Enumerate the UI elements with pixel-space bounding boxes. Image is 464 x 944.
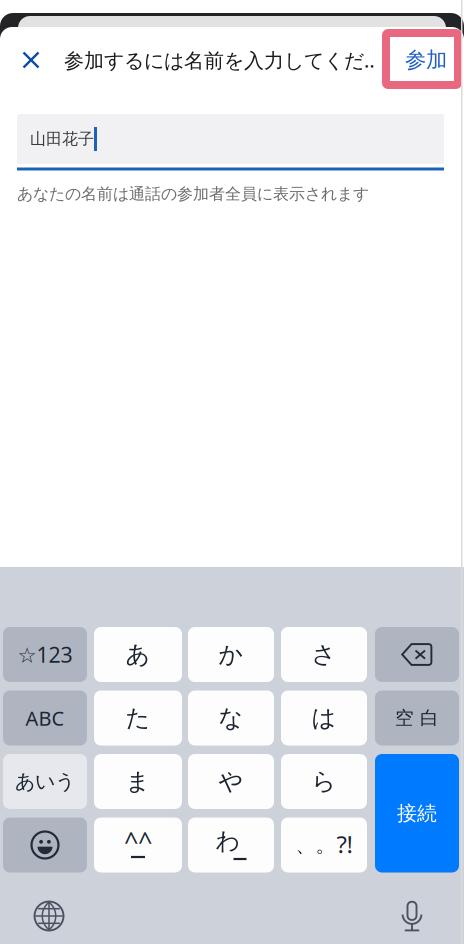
button[interactable]: さ bbox=[281, 627, 367, 682]
staticText: あ bbox=[125, 640, 150, 669]
staticText: や bbox=[218, 767, 243, 796]
button[interactable]: 記号と数字 bbox=[3, 627, 87, 682]
button[interactable]: あ bbox=[94, 627, 182, 682]
button[interactable]: 音声入力 bbox=[400, 900, 424, 932]
button[interactable]: ABC bbox=[3, 690, 87, 745]
staticText: 山田花子 bbox=[30, 129, 94, 149]
staticText: 接続 bbox=[397, 801, 437, 826]
staticText: わ bbox=[215, 826, 240, 856]
button[interactable]: ま bbox=[94, 754, 182, 809]
staticText: ☆123 bbox=[17, 640, 72, 669]
staticText: た bbox=[125, 703, 150, 733]
button[interactable]: 句読点 bbox=[281, 817, 367, 872]
button[interactable]: わ bbox=[188, 817, 274, 872]
button[interactable]: あいう bbox=[3, 754, 87, 809]
button[interactable]: は bbox=[281, 690, 367, 745]
staticText: 、。 bbox=[295, 833, 335, 857]
staticText: 参加するには名前を入力してくだ‥ bbox=[64, 47, 375, 73]
button[interactable]: 削除 bbox=[375, 627, 459, 682]
staticText: あいう bbox=[15, 769, 75, 794]
staticText: ら bbox=[311, 767, 336, 796]
staticText: ま bbox=[125, 767, 150, 796]
staticText: な bbox=[218, 703, 243, 733]
button[interactable]: ら bbox=[281, 754, 367, 809]
staticText: か bbox=[218, 640, 243, 669]
staticText: さ bbox=[311, 640, 336, 669]
staticText: ?! bbox=[336, 828, 352, 860]
button[interactable]: 絵文字 bbox=[3, 817, 87, 872]
staticText: ABC bbox=[25, 705, 64, 731]
staticText: は bbox=[311, 703, 336, 733]
button[interactable]: 参加 bbox=[391, 45, 461, 75]
staticText: 空 白 bbox=[395, 706, 439, 729]
button[interactable]: か bbox=[188, 627, 274, 682]
staticText: 参加 bbox=[405, 47, 447, 73]
button[interactable]: な bbox=[188, 690, 274, 745]
button[interactable]: 言語を切り替え bbox=[34, 901, 63, 930]
button[interactable]: 接続 bbox=[375, 754, 459, 872]
button[interactable]: 顔文字 bbox=[94, 817, 182, 872]
button[interactable]: 閉じる bbox=[15, 45, 47, 75]
staticText: ^^ bbox=[124, 824, 152, 858]
button[interactable]: 空 白 bbox=[375, 690, 459, 745]
button[interactable]: た bbox=[94, 690, 182, 745]
button[interactable]: や bbox=[188, 754, 274, 809]
staticText: あなたの名前は通話の参加者全員に表示されます bbox=[17, 184, 369, 204]
